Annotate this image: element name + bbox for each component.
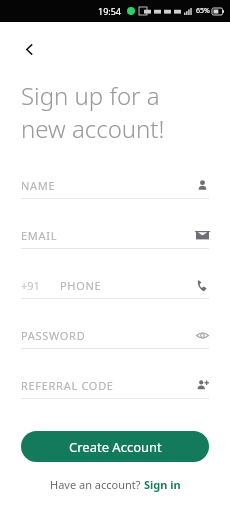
button[interactable]: +91 — [21, 273, 209, 323]
staticText: 19:54 — [98, 5, 122, 17]
staticText: +91 — [21, 278, 40, 293]
staticText: REFERRAL CODE — [21, 378, 114, 393]
button[interactable]: NAME — [21, 173, 209, 223]
button[interactable]: Back — [12, 32, 46, 66]
button[interactable]: EMAIL — [21, 223, 209, 273]
staticText: NAME — [21, 178, 56, 193]
staticText: Create Account — [69, 438, 162, 456]
staticText: PHONE — [60, 278, 102, 293]
button[interactable]: REFERRAL CODE — [21, 373, 209, 423]
staticText: Have an account? — [50, 477, 144, 492]
staticText: new account! — [21, 112, 165, 145]
staticText: PASSWORD — [21, 328, 86, 343]
staticText: Sign in — [144, 477, 181, 492]
button[interactable]: Create Account — [21, 431, 209, 462]
button[interactable]: Have an account? — [21, 477, 209, 492]
staticText: 65% — [196, 6, 210, 16]
staticText: Sign up for a — [21, 79, 160, 112]
button[interactable]: PASSWORD — [21, 323, 209, 373]
staticText: EMAIL — [21, 228, 58, 243]
